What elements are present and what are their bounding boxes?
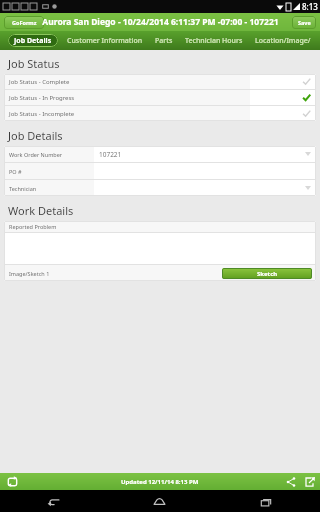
button[interactable]: Recent apps — [213, 490, 320, 512]
staticText: Job Status - Complete — [9, 78, 70, 86]
staticText: Aurora San Diego - 10/24/2014 6:11:37 PM… — [42, 16, 279, 28]
staticText: Technician Hours — [185, 36, 243, 46]
staticText: Job Status - In Progress — [9, 94, 75, 102]
staticText: Job Status - Incomplete — [9, 110, 75, 118]
button[interactable]: Sketch — [222, 268, 312, 279]
staticText: GoFormz — [12, 19, 37, 26]
staticText: 107221 — [99, 150, 122, 159]
staticText: Updated 12/11/14 8:13 PM — [121, 478, 199, 486]
button[interactable]: Parts — [149, 31, 179, 50]
staticText: Technician — [9, 185, 37, 192]
button[interactable]: Job Status - Complete — [4, 74, 316, 89]
staticText: PO # — [9, 168, 22, 175]
staticText: Location/Image/Sketch — [255, 36, 314, 46]
button[interactable]: Home — [106, 490, 213, 512]
button[interactable]: PO # — [4, 163, 316, 179]
staticText: Work Order Number — [9, 151, 63, 158]
staticText: Customer Information — [67, 36, 143, 46]
button[interactable]: Save — [292, 16, 316, 29]
staticText: Reported Problem — [9, 223, 57, 230]
staticText: Job Details — [8, 128, 63, 143]
staticText: Sketch — [257, 270, 278, 278]
staticText: Image/Sketch 1 — [9, 270, 50, 277]
button[interactable]: Job Status - In Progress — [4, 90, 316, 105]
button[interactable]: Reported Problem — [4, 221, 316, 232]
button[interactable]: Share — [284, 475, 297, 488]
button[interactable]: Export — [303, 475, 316, 488]
button[interactable]: Job Status - Incomplete — [4, 106, 316, 121]
button[interactable]: Job Details — [8, 34, 58, 47]
button[interactable]: Technician Hours — [179, 31, 249, 50]
staticText: 8:13 — [302, 1, 318, 12]
button[interactable]: Customer Information — [61, 31, 149, 50]
button[interactable]: Back — [0, 490, 106, 512]
staticText: Work Details — [8, 203, 74, 218]
button[interactable]: Work Order Number — [4, 146, 316, 162]
staticText: Save — [298, 19, 311, 26]
staticText: Job Details — [14, 36, 52, 46]
button[interactable]: Technician — [4, 180, 316, 196]
button[interactable]: GoFormz home — [4, 16, 44, 29]
staticText: Job Status — [8, 56, 60, 71]
button[interactable]: Location/Image/Sketch — [249, 31, 320, 50]
button[interactable]: Sync — [0, 473, 24, 490]
staticText: Parts — [155, 36, 173, 46]
